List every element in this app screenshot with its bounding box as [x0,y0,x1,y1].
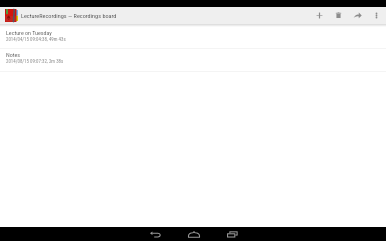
button[interactable]: Notes [0,49,386,71]
button[interactable]: More options [367,7,386,24]
staticText: 2014/04/15 09:04:38, 49m 43s [6,36,66,42]
staticText: Notes [6,51,21,58]
button[interactable]: Add recording [310,7,329,24]
staticText: LectureRecordings — Recordings board [21,12,117,19]
button[interactable]: Back [136,227,174,241]
button[interactable]: Lecture on Tuesday [0,27,386,48]
button[interactable]: Share [348,7,367,24]
staticText: Lecture on Tuesday [6,29,52,36]
button[interactable]: Home [174,227,213,241]
button[interactable]: LectureRecordings — Recordings board [0,9,117,22]
staticText: 2014/08/15 09:07:32, 2m 38s [6,58,64,64]
button[interactable]: Recent apps [213,227,251,241]
button[interactable]: Delete [329,7,348,24]
